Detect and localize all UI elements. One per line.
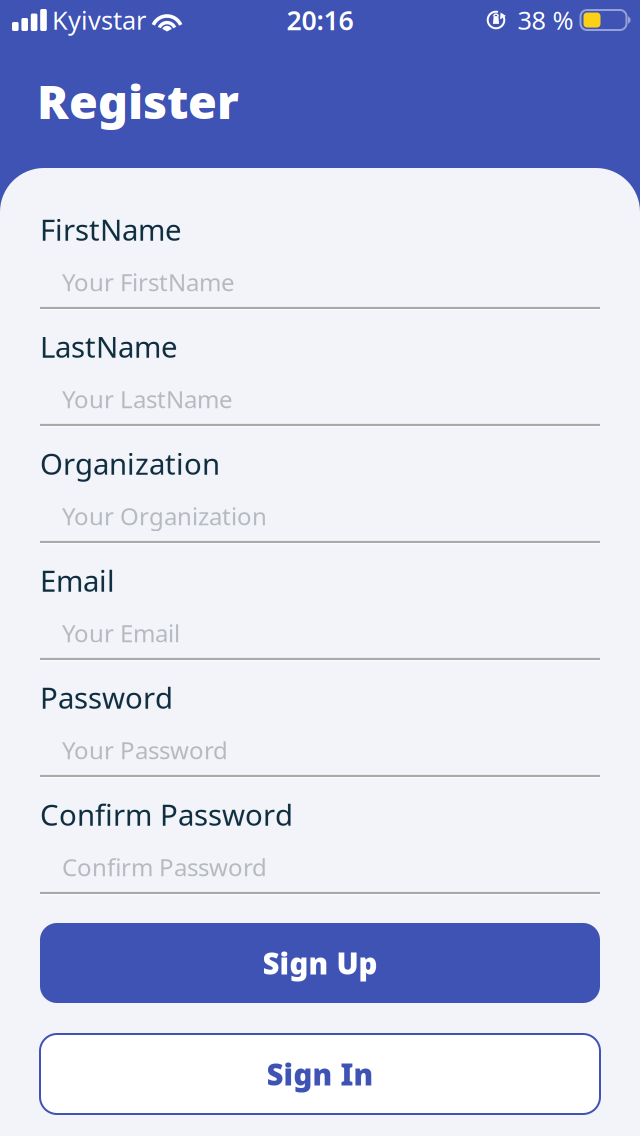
- staticText: Your FirstName: [62, 266, 235, 298]
- staticText: Register: [37, 70, 239, 132]
- staticText: Confirm Password: [40, 795, 293, 834]
- button[interactable]: Sign In: [40, 1034, 600, 1114]
- staticText: LastName: [40, 327, 178, 366]
- staticText: Email: [40, 561, 115, 600]
- staticText: 20:16: [286, 2, 353, 38]
- staticText: Your Password: [62, 734, 228, 766]
- staticText: Your Email: [62, 617, 180, 649]
- staticText: FirstName: [40, 210, 182, 249]
- button[interactable]: Sign Up: [40, 923, 600, 1003]
- staticText: Your LastName: [62, 383, 233, 415]
- staticText: Kyivstar: [52, 3, 146, 37]
- staticText: Confirm Password: [62, 851, 267, 883]
- staticText: Sign Up: [262, 943, 377, 982]
- staticText: 38 %: [517, 3, 573, 37]
- staticText: Password: [40, 678, 173, 717]
- staticText: Your Organization: [62, 500, 267, 532]
- staticText: Sign In: [266, 1054, 373, 1093]
- staticText: Organization: [40, 444, 220, 483]
